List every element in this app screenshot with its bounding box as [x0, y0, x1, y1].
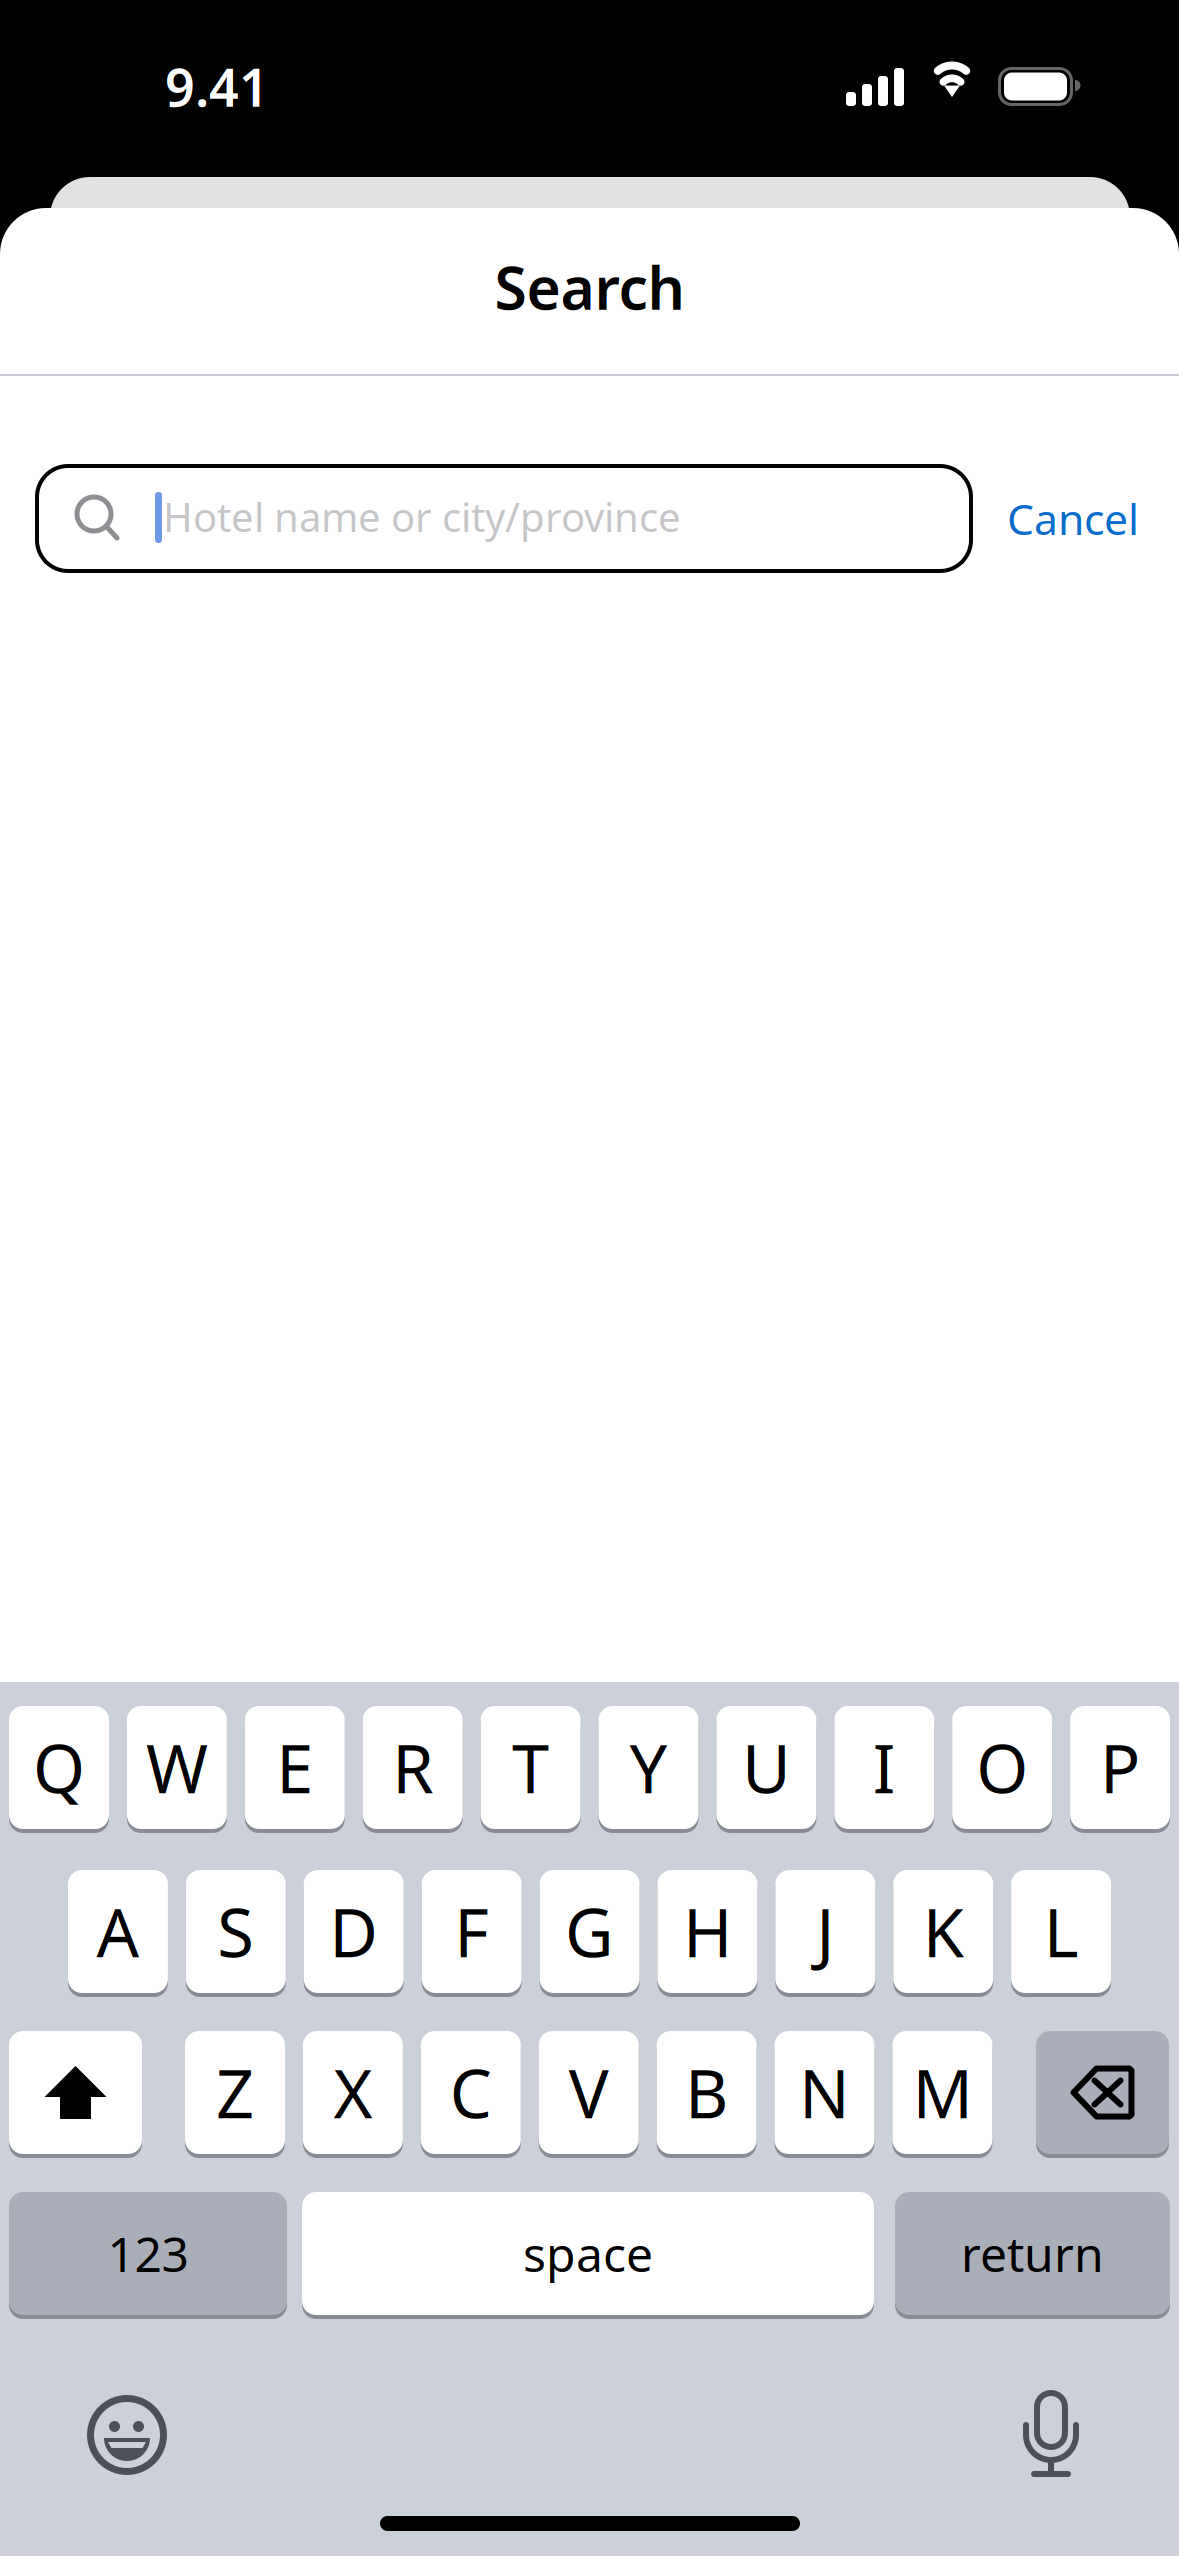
- button[interactable]: J: [775, 1870, 875, 1993]
- button[interactable]: Shift: [9, 2031, 142, 2154]
- staticText: C: [450, 2048, 492, 2137]
- button[interactable]: O: [952, 1706, 1052, 1829]
- staticText: K: [923, 1887, 964, 1976]
- button[interactable]: Emoji keyboard: [72, 2380, 182, 2490]
- button[interactable]: B: [657, 2031, 757, 2154]
- staticText: Y: [629, 1723, 667, 1812]
- button[interactable]: S: [186, 1870, 286, 1993]
- button[interactable]: X: [303, 2031, 403, 2154]
- staticText: F: [454, 1887, 489, 1976]
- staticText: I: [873, 1723, 896, 1812]
- button[interactable]: return: [895, 2192, 1170, 2315]
- button[interactable]: Z: [185, 2031, 285, 2154]
- button[interactable]: Cancel: [973, 466, 1173, 571]
- button[interactable]: N: [774, 2031, 874, 2154]
- button[interactable]: L: [1011, 1870, 1111, 1993]
- button[interactable]: U: [716, 1706, 816, 1829]
- button[interactable]: Y: [598, 1706, 698, 1829]
- staticText: Hotel name or city/province: [163, 490, 681, 543]
- button[interactable]: H: [657, 1870, 757, 1993]
- staticText: N: [799, 2048, 850, 2137]
- staticText: J: [816, 1887, 834, 1976]
- staticText: S: [217, 1887, 254, 1976]
- staticText: O: [976, 1723, 1028, 1812]
- staticText: A: [96, 1887, 139, 1976]
- staticText: Q: [33, 1723, 85, 1812]
- button[interactable]: R: [363, 1706, 463, 1829]
- staticText: Search: [494, 248, 684, 326]
- staticText: X: [333, 2048, 372, 2137]
- staticText: V: [569, 2048, 609, 2137]
- staticText: U: [742, 1723, 791, 1812]
- staticText: P: [1100, 1723, 1140, 1812]
- button[interactable]: Hotel name or city/province: [37, 466, 971, 571]
- staticText: T: [512, 1723, 549, 1812]
- button[interactable]: P: [1070, 1706, 1170, 1829]
- staticText: R: [392, 1723, 433, 1812]
- button[interactable]: F: [422, 1870, 522, 1993]
- staticText: return: [961, 2222, 1104, 2285]
- staticText: H: [683, 1887, 732, 1976]
- button[interactable]: Q: [9, 1706, 109, 1829]
- staticText: E: [276, 1723, 313, 1812]
- button[interactable]: Dictation: [996, 2380, 1106, 2490]
- staticText: Z: [216, 2048, 254, 2137]
- button[interactable]: M: [892, 2031, 992, 2154]
- button[interactable]: D: [304, 1870, 404, 1993]
- staticText: G: [565, 1887, 614, 1976]
- button[interactable]: A: [68, 1870, 168, 1993]
- button[interactable]: E: [245, 1706, 345, 1829]
- button[interactable]: 123: [9, 2192, 287, 2315]
- staticText: space: [523, 2222, 653, 2285]
- staticText: L: [1044, 1887, 1079, 1976]
- button[interactable]: G: [540, 1870, 640, 1993]
- button[interactable]: T: [481, 1706, 581, 1829]
- button[interactable]: K: [893, 1870, 993, 1993]
- button[interactable]: W: [127, 1706, 227, 1829]
- button[interactable]: I: [834, 1706, 934, 1829]
- staticText: W: [146, 1723, 208, 1812]
- button[interactable]: C: [421, 2031, 521, 2154]
- button[interactable]: Delete: [1036, 2031, 1169, 2154]
- button[interactable]: space: [302, 2192, 874, 2315]
- staticText: 123: [107, 2222, 188, 2285]
- button[interactable]: V: [539, 2031, 639, 2154]
- staticText: Cancel: [1007, 490, 1139, 547]
- staticText: M: [912, 2048, 972, 2137]
- staticText: B: [685, 2048, 728, 2137]
- staticText: D: [329, 1887, 378, 1976]
- staticText: 9.41: [165, 52, 269, 121]
